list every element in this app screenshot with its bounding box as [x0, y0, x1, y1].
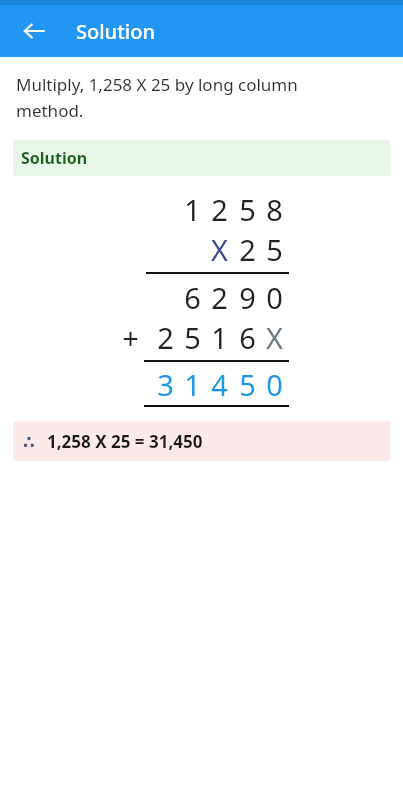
- staticText: 6: [239, 318, 256, 357]
- staticText: 1: [211, 318, 228, 357]
- staticText: 0: [266, 278, 283, 317]
- staticText: 1: [184, 365, 201, 403]
- staticText: Multiply, 1,258 X 25 by long column meth…: [16, 73, 298, 122]
- staticText: ∴: [23, 432, 35, 452]
- staticText: X: [211, 230, 228, 269]
- staticText: X: [266, 318, 283, 357]
- staticText: 1,258 X 25 = 31,450: [47, 430, 203, 453]
- staticText: 5: [266, 230, 283, 269]
- staticText: 2: [211, 190, 228, 229]
- staticText: 3: [157, 365, 174, 403]
- staticText: 2: [211, 278, 228, 317]
- staticText: Solution: [76, 18, 155, 45]
- staticText: Solution: [21, 147, 88, 169]
- staticText: 2: [239, 230, 256, 269]
- staticText: 2: [157, 318, 174, 357]
- staticText: 5: [184, 318, 201, 357]
- staticText: 5: [239, 190, 256, 229]
- staticText: 6: [184, 278, 201, 317]
- button[interactable]: Back: [12, 9, 56, 53]
- staticText: 1: [184, 190, 201, 229]
- staticText: 5: [239, 365, 256, 403]
- staticText: 8: [266, 190, 283, 229]
- staticText: 9: [239, 278, 256, 317]
- staticText: 4: [211, 365, 228, 403]
- staticText: 0: [266, 365, 283, 403]
- staticText: +: [122, 318, 139, 357]
